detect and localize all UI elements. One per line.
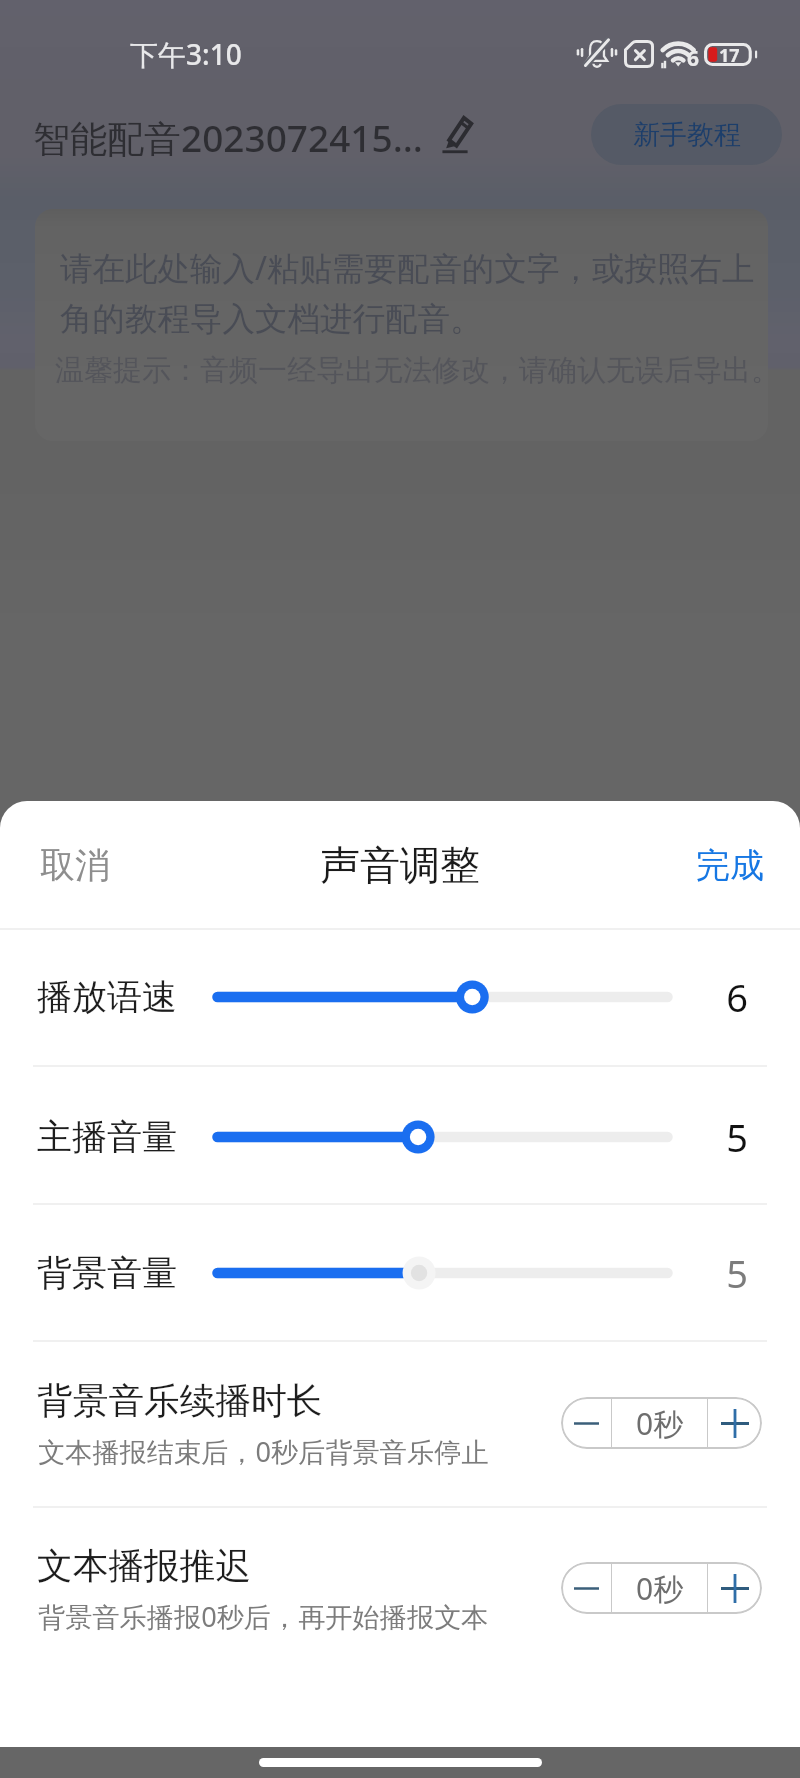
button[interactable]: 请在此处输入/粘贴需要配音的文字，或按照右上 — [35, 209, 768, 441]
staticText: 温馨提示：音频一经导出无法修改，请确认无误后导出。 — [55, 352, 768, 389]
staticText: 文本播报结束后，0秒后背景音乐停止 — [38, 1433, 489, 1470]
other: No SIM card — [624, 40, 654, 68]
staticText: 请在此处输入/粘贴需要配音的文字，或按照右上 — [60, 245, 755, 289]
other: Battery 17 percent — [704, 43, 758, 66]
button[interactable]: Decrease — [561, 1397, 611, 1449]
staticText: 完成 — [696, 844, 764, 887]
staticText: 背景音量 — [37, 1251, 177, 1295]
button[interactable]: 主播音量 — [201, 1107, 684, 1167]
button[interactable]: Increase — [708, 1397, 762, 1449]
button[interactable]: Increase — [708, 1562, 762, 1614]
staticText: 0秒 — [636, 1568, 684, 1609]
staticText: 背景音乐播报0秒后，再开始播报文本 — [38, 1598, 489, 1635]
other: Wi-Fi — [661, 37, 701, 71]
staticText: 17 — [719, 43, 740, 66]
button[interactable]: 完成 — [655, 813, 800, 917]
staticText: 下午3:10 — [130, 35, 242, 71]
staticText: 文本播报推迟 — [37, 1544, 252, 1589]
other: Rename — [438, 113, 475, 154]
staticText: 6 — [726, 971, 748, 1023]
staticText: 5 — [726, 1111, 748, 1163]
staticText: 主播音量 — [37, 1115, 177, 1159]
button[interactable]: Decrease — [561, 1562, 611, 1614]
staticText: 声音调整 — [320, 840, 480, 890]
staticText: 播放语速 — [37, 975, 177, 1019]
other: Silent mode — [578, 37, 616, 71]
staticText: 新手教程 — [633, 118, 741, 152]
staticText: 智能配音2023072415... — [33, 112, 423, 163]
button[interactable]: 播放语速 — [201, 967, 684, 1027]
staticText: 背景音乐续播时长 — [37, 1379, 323, 1424]
staticText: 6 — [687, 44, 700, 73]
button[interactable]: 新手教程 — [591, 104, 782, 165]
button[interactable]: 取消 — [0, 813, 150, 917]
staticText: 0秒 — [636, 1403, 684, 1444]
staticText: 5 — [726, 1247, 748, 1299]
staticText: 角的教程导入文档进行配音。 — [60, 299, 483, 340]
staticText: 取消 — [40, 843, 110, 887]
button[interactable]: 背景音量 — [201, 1243, 684, 1303]
